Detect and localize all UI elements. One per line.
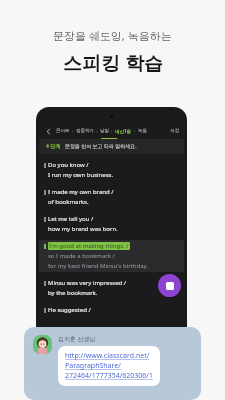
staticText: He suggested /	[48, 306, 91, 314]
staticText: 문장을 쉐도잉, 녹음하는	[53, 28, 172, 43]
staticText: 문장을 먼저 보고 따라 말하세요.	[65, 143, 137, 150]
button[interactable]: Do you know /	[39, 161, 184, 179]
button[interactable]: I made my own brand /	[39, 188, 184, 206]
staticText: ParagraphShare/	[65, 361, 121, 371]
button[interactable]: Minsu was very impressed /	[39, 279, 184, 297]
button[interactable]: He suggested /	[39, 306, 184, 314]
staticText: Let me tell you /	[48, 215, 94, 223]
staticText: Do you know /	[48, 161, 89, 169]
staticText: by the bookmark.	[48, 289, 98, 297]
staticText: 저장	[170, 128, 179, 134]
staticText: 김지훈 선생님	[58, 335, 96, 343]
button[interactable]: 녹음	[138, 128, 147, 134]
button[interactable]: 집중하기	[76, 128, 94, 134]
staticText: I'm good at making things. /	[49, 242, 129, 250]
staticText: 집중하기	[76, 128, 94, 134]
staticText: so I made a bookmark /	[48, 252, 115, 260]
button[interactable]: 콘서트	[56, 128, 70, 134]
staticText: 스피킹 학습	[63, 50, 163, 76]
staticText: ›	[96, 128, 98, 134]
staticText: 녹음	[138, 128, 147, 134]
staticText: ›	[111, 128, 113, 134]
button[interactable]: Back	[44, 127, 53, 136]
button[interactable]: Let me tell you /	[39, 215, 184, 233]
staticText: I run my own business.	[48, 171, 114, 179]
staticText: http://www.classcard.net/	[65, 351, 150, 361]
staticText: of bookmarks.	[48, 198, 89, 206]
button[interactable]: http://www.classcard.net/	[58, 346, 160, 386]
staticText: I made my own brand /	[48, 188, 114, 196]
staticText: 272464/1777354/620306/1	[65, 371, 153, 381]
staticText: for my best friend Minsu's birthday.	[48, 262, 149, 270]
button[interactable]: 내신1등	[115, 128, 132, 134]
staticText: ›	[72, 128, 74, 134]
staticText: how my brand was born.	[48, 225, 118, 233]
staticText: 콘서트	[56, 128, 70, 134]
staticText: 내신1등	[115, 128, 132, 134]
staticText: 4 단계	[46, 143, 61, 150]
staticText: ›	[134, 128, 136, 134]
staticText: 낱말	[100, 128, 109, 134]
staticText: Minsu was very impressed /	[48, 279, 127, 287]
button[interactable]: Stop recording	[158, 274, 181, 297]
button[interactable]: 낱말	[100, 128, 109, 134]
button[interactable]: I'm good at making things. /	[39, 240, 184, 272]
